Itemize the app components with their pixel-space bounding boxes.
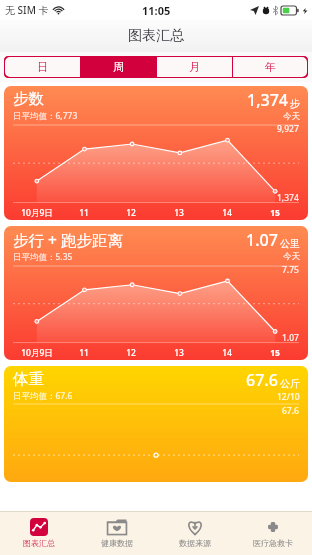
button[interactable]: 数据来源 <box>156 511 234 555</box>
staticText: 公里 <box>280 237 300 250</box>
staticText: 日平均值：5.35 <box>13 251 73 263</box>
staticText: 13 <box>174 347 184 359</box>
staticText: 1,374 <box>277 192 299 204</box>
button[interactable]: 年 <box>233 56 308 78</box>
staticText: 数据来源 <box>179 538 211 548</box>
button[interactable]: 日 <box>4 56 80 78</box>
button[interactable]: 步数 <box>4 86 308 220</box>
staticText: 今天 <box>283 251 300 262</box>
button[interactable]: 图表汇总 <box>0 511 78 555</box>
staticText: 日 <box>37 60 48 74</box>
staticText: 图表汇总 <box>128 27 184 45</box>
staticText: 11 <box>79 347 89 359</box>
staticText: 医疗急救卡 <box>253 538 293 548</box>
staticText: 67.6 <box>282 405 299 417</box>
staticText: 15 <box>270 347 280 359</box>
staticText: 健康数据 <box>101 538 133 548</box>
staticText: 12 <box>126 347 136 359</box>
staticText: 12 <box>126 207 136 219</box>
staticText: 体重 <box>13 369 44 389</box>
staticText: 今天 <box>283 111 300 122</box>
button[interactable]: 周 <box>81 56 156 78</box>
staticText: 9,927 <box>277 123 299 135</box>
staticText: 日平均值：6,773 <box>13 110 78 122</box>
staticText: 67.6 <box>246 369 278 391</box>
staticText: 14 <box>222 347 232 359</box>
button[interactable]: 体重 <box>4 366 308 482</box>
staticText: 公斤 <box>280 377 300 390</box>
staticText: 1.07 <box>282 332 299 344</box>
staticText: 1,374 <box>247 89 288 111</box>
staticText: 11 <box>79 207 89 219</box>
staticText: 步数 <box>13 89 44 109</box>
staticText: 无 SIM 卡 <box>5 3 49 17</box>
staticText: 10月9日 <box>21 347 53 359</box>
staticText: 1.07 <box>246 229 278 251</box>
staticText: 月 <box>189 60 200 74</box>
staticText: 日平均值：67.6 <box>13 390 73 402</box>
button[interactable]: 健康数据 <box>78 511 156 555</box>
button[interactable]: 月 <box>157 56 232 78</box>
staticText: 7.75 <box>282 264 299 276</box>
staticText: 13 <box>174 207 184 219</box>
staticText: 图表汇总 <box>23 538 55 548</box>
staticText: 12/10 <box>277 391 300 403</box>
staticText: 年 <box>265 60 276 74</box>
staticText: 14 <box>222 207 232 219</box>
staticText: 11:05 <box>142 3 171 18</box>
button[interactable]: 步行 + 跑步距离 <box>4 226 308 360</box>
staticText: 15 <box>270 207 280 219</box>
staticText: 步 <box>290 97 300 110</box>
staticText: 步行 + 跑步距离 <box>13 229 123 250</box>
staticText: 周 <box>113 60 124 74</box>
staticText: 10月9日 <box>21 207 53 219</box>
button[interactable]: 医疗急救卡 <box>234 511 312 555</box>
